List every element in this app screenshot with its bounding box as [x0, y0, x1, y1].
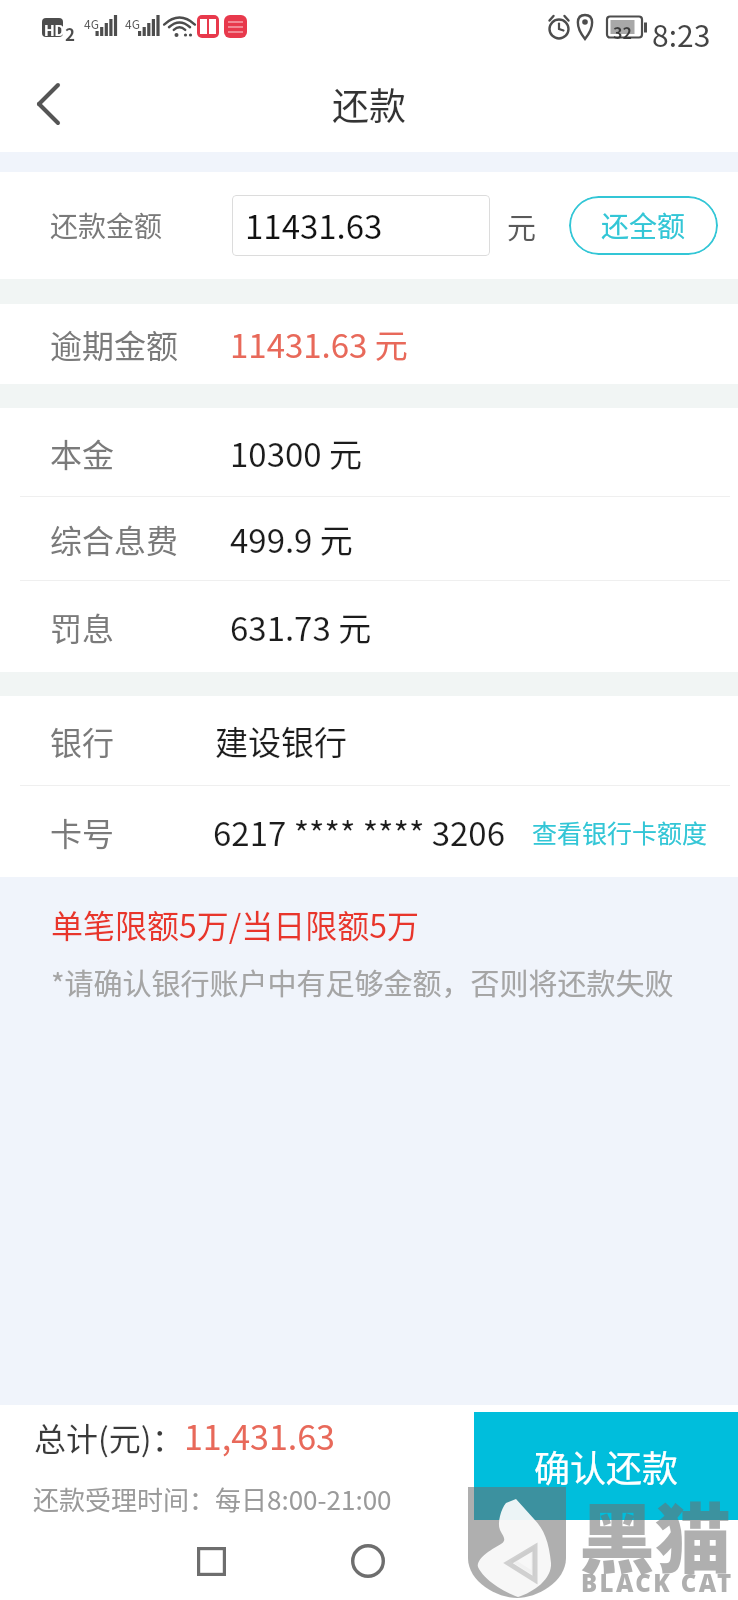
staticText: 8:23 [652, 12, 711, 55]
staticText: 11431.63 [245, 201, 383, 249]
button[interactable]: 本金 [0, 408, 738, 497]
staticText: 10300 元 [230, 429, 362, 477]
staticText: 还全额 [601, 205, 686, 246]
button[interactable]: 综合息费 [0, 497, 738, 581]
button[interactable]: 查看银行卡额度 [532, 814, 708, 850]
button[interactable]: Home [330, 1523, 406, 1599]
staticText: BLACK CAT [581, 1566, 734, 1599]
staticText: 卡号 [50, 809, 115, 855]
staticText: 确认还款 [534, 1440, 679, 1492]
staticText: 元 [507, 205, 537, 247]
staticText: 本金 [50, 430, 115, 476]
staticText: 499.9 元 [230, 515, 353, 563]
staticText: 罚息 [50, 604, 115, 650]
button[interactable]: 罚息 [0, 581, 738, 672]
button[interactable]: 11431.63 [232, 195, 490, 256]
staticText: HD [44, 20, 65, 40]
staticText: 综合息费 [50, 516, 179, 562]
button[interactable]: 卡号 [0, 786, 738, 877]
staticText: 单笔限额5万/当日限额5万 [51, 901, 420, 947]
button[interactable]: 还全额 [569, 196, 718, 255]
staticText: 还款 [332, 77, 406, 131]
staticText: 11,431.63 [184, 1411, 335, 1460]
button[interactable]: Back [487, 1523, 563, 1599]
staticText: 银行 [50, 718, 115, 764]
staticText: 11431.63 元 [230, 320, 408, 368]
staticText: *请确认银行账户中有足够金额，否则将还款失败 [51, 961, 674, 1003]
button[interactable]: Recents [173, 1523, 249, 1599]
button[interactable]: Back [0, 68, 90, 152]
staticText: 黑猫 [579, 1479, 731, 1589]
staticText: 建设银行 [215, 717, 347, 765]
button[interactable]: 银行 [0, 696, 738, 786]
staticText: 4G [84, 15, 99, 32]
staticText: 逾期金额 [50, 321, 179, 367]
staticText: 4G [125, 15, 140, 32]
staticText: 6217 **** **** 3206 [213, 808, 505, 856]
staticText: 2 [65, 21, 76, 46]
staticText: 还款受理时间：每日8:00-21:00 [33, 1480, 392, 1518]
button[interactable]: 确认还款 [474, 1412, 738, 1520]
staticText: 631.73 元 [230, 603, 372, 651]
staticText: 还款金额 [50, 205, 163, 246]
staticText: 总计(元)： [34, 1414, 184, 1460]
staticText: 32 [613, 20, 632, 43]
button[interactable]: 逾期金额 [0, 304, 738, 384]
